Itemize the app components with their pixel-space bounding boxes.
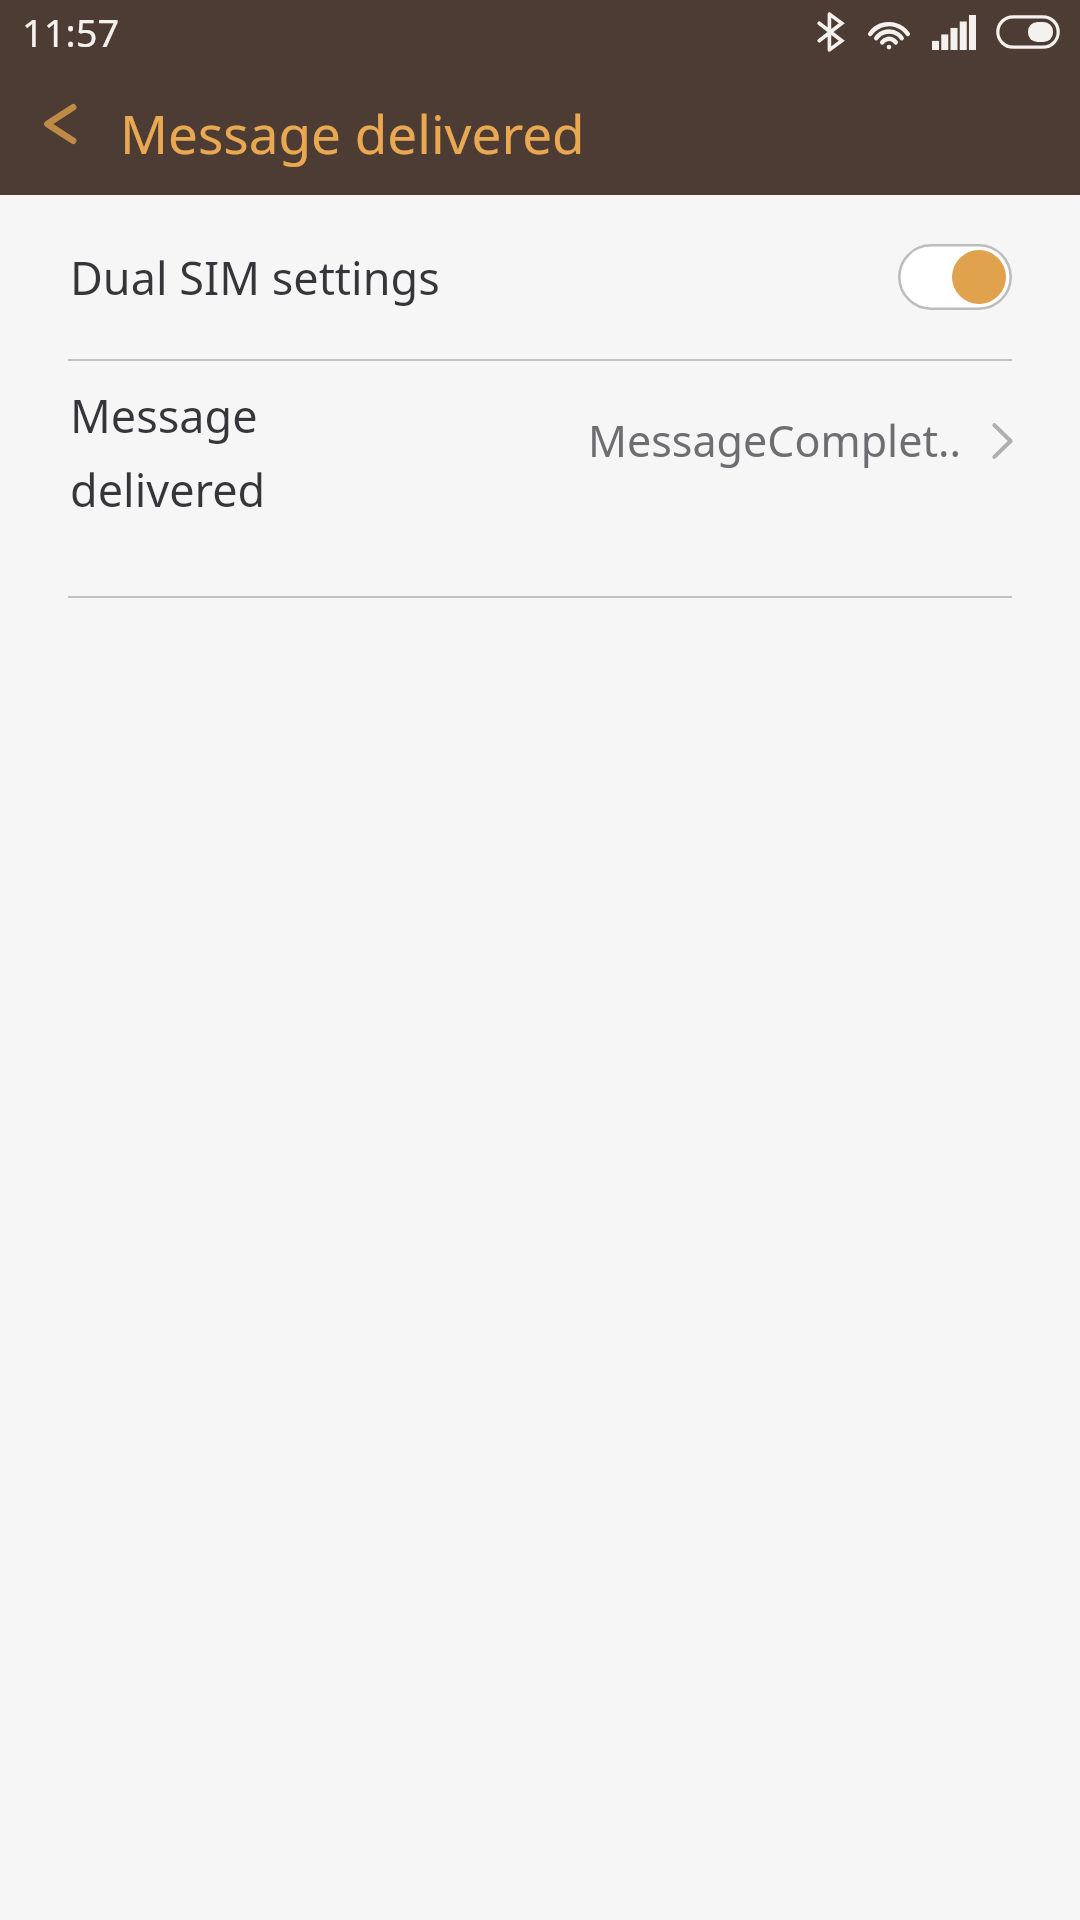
staticText: Message delivered bbox=[120, 97, 585, 169]
staticText: 11:57 bbox=[22, 6, 120, 58]
button[interactable]: Dual SIM settings, on bbox=[898, 244, 1012, 310]
staticText: Message bbox=[70, 385, 258, 446]
staticText: delivered bbox=[70, 459, 266, 520]
button[interactable]: Navigate back bbox=[20, 86, 96, 162]
button[interactable]: Dual SIM settings bbox=[0, 195, 1080, 359]
button[interactable]: Message bbox=[0, 361, 1080, 596]
staticText: Dual SIM settings bbox=[70, 247, 440, 308]
staticText: MessageComplet.. bbox=[588, 411, 962, 470]
